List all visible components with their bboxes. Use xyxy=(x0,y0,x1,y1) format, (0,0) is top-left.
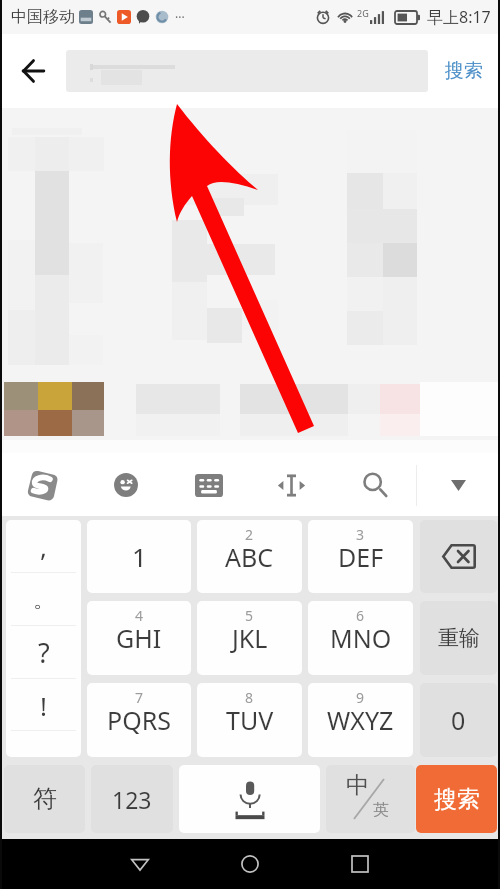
staticText: 搜索 xyxy=(445,59,483,83)
button[interactable]: 搜索 xyxy=(428,34,500,108)
button[interactable]: Back xyxy=(0,34,66,108)
button[interactable]: Search xyxy=(333,453,416,517)
button[interactable]: Emoji xyxy=(84,453,167,517)
button[interactable]: 0 xyxy=(420,683,497,757)
button[interactable]: WXYZ xyxy=(308,683,413,757)
staticText: PQRS xyxy=(107,703,171,737)
staticText: 中 xyxy=(346,771,369,800)
button[interactable]: TUV xyxy=(197,683,302,757)
button[interactable]: Sogou input xyxy=(0,453,84,517)
button[interactable]: Keyboard layout xyxy=(167,453,250,517)
staticText: ! xyxy=(40,688,47,723)
button[interactable]: Chinese English toggle xyxy=(326,765,415,833)
button[interactable]: Back xyxy=(118,842,162,886)
staticText: 6 xyxy=(356,606,365,625)
staticText: 搜索 xyxy=(434,785,480,814)
staticText: ? xyxy=(38,634,50,671)
button[interactable]: Delete xyxy=(420,520,497,593)
staticText: 早上8:17 xyxy=(427,6,491,28)
button[interactable]: PQRS xyxy=(87,683,191,757)
staticText: 1 xyxy=(132,539,147,574)
button[interactable]: Home xyxy=(228,842,272,886)
staticText: 。 xyxy=(33,586,55,614)
staticText: 英 xyxy=(373,800,389,820)
staticText: 9 xyxy=(356,688,365,707)
button[interactable]: Hide keyboard xyxy=(417,453,500,517)
staticText: ··· xyxy=(175,9,185,25)
staticText: JKL xyxy=(232,621,268,655)
staticText: 2G xyxy=(357,7,369,19)
staticText: 中国移动 xyxy=(11,7,75,27)
staticText: MNO xyxy=(330,621,392,655)
button[interactable]: ? xyxy=(6,626,81,679)
staticText: TUV xyxy=(226,703,274,737)
staticText: 3 xyxy=(356,525,365,544)
button[interactable]: MNO xyxy=(308,601,413,675)
staticText: 重输 xyxy=(438,625,480,651)
button[interactable]: Voice input xyxy=(179,765,320,833)
staticText: 123 xyxy=(112,784,152,815)
button[interactable]: GHI xyxy=(87,601,191,675)
staticText: WXYZ xyxy=(327,703,394,737)
button[interactable]: 符 xyxy=(4,765,85,833)
button[interactable]: , xyxy=(6,520,81,573)
button[interactable]: 。 xyxy=(6,573,81,626)
staticText: 2 xyxy=(245,525,254,544)
staticText: DEF xyxy=(338,540,384,574)
button[interactable]: 1 xyxy=(87,520,191,593)
staticText: 5 xyxy=(245,606,254,625)
staticText: ABC xyxy=(225,540,274,574)
button[interactable]: 重输 xyxy=(420,601,497,675)
staticText: 7 xyxy=(135,688,144,707)
staticText: 4 xyxy=(135,606,144,625)
button[interactable]: Move cursor xyxy=(250,453,333,517)
button[interactable]: DEF xyxy=(308,520,413,593)
button[interactable]: Recent apps xyxy=(338,842,382,886)
staticText: 符 xyxy=(33,784,57,814)
staticText: GHI xyxy=(116,621,162,655)
button[interactable]: ! xyxy=(6,679,81,731)
staticText: , xyxy=(40,529,47,564)
button[interactable]: JKL xyxy=(197,601,302,675)
button[interactable]: 123 xyxy=(91,765,173,833)
button[interactable]: ABC xyxy=(197,520,302,593)
staticText: 0 xyxy=(451,703,466,737)
staticText: 8 xyxy=(245,688,254,707)
button[interactable]: 搜索 xyxy=(416,765,497,833)
